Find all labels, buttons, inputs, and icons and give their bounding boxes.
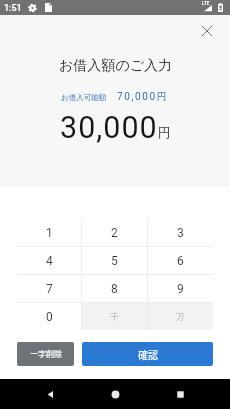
- button[interactable]: Home: [100, 379, 130, 409]
- button[interactable]: 千: [82, 303, 147, 330]
- button[interactable]: 5: [82, 247, 147, 274]
- staticText: 7: [46, 282, 53, 296]
- button[interactable]: 6: [148, 247, 213, 274]
- button[interactable]: 4: [17, 247, 81, 274]
- button[interactable]: 万: [148, 303, 213, 330]
- button[interactable]: 1: [17, 219, 81, 246]
- button[interactable]: 確認: [82, 342, 213, 366]
- staticText: 30,000: [60, 110, 158, 146]
- staticText: 9: [177, 282, 184, 296]
- staticText: お借入可能額: [61, 93, 107, 102]
- staticText: 70,000円: [117, 90, 169, 103]
- button[interactable]: 閉じる: [192, 16, 221, 45]
- button[interactable]: Recents: [165, 379, 195, 409]
- staticText: 円: [158, 125, 171, 141]
- staticText: 0: [46, 310, 53, 324]
- staticText: 千: [110, 311, 119, 322]
- button[interactable]: 9: [148, 275, 213, 302]
- button[interactable]: 3: [148, 219, 213, 246]
- staticText: 4: [46, 254, 53, 268]
- staticText: 3: [177, 226, 184, 240]
- staticText: 6: [177, 254, 184, 268]
- button[interactable]: Back: [35, 379, 65, 409]
- staticText: LTE: [202, 1, 210, 6]
- staticText: 確認: [138, 347, 158, 361]
- staticText: 8: [111, 282, 118, 296]
- button[interactable]: 0: [17, 303, 81, 330]
- staticText: 一字削除: [30, 348, 62, 360]
- button[interactable]: 2: [82, 219, 147, 246]
- button[interactable]: 8: [82, 275, 147, 302]
- button[interactable]: 一字削除: [17, 342, 74, 366]
- staticText: 万: [176, 311, 185, 322]
- button[interactable]: 7: [17, 275, 81, 302]
- staticText: お借入額のご入力: [59, 57, 172, 75]
- staticText: 1:51: [4, 3, 22, 14]
- staticText: 2: [111, 226, 118, 240]
- staticText: 1: [46, 226, 53, 240]
- staticText: 5: [111, 254, 118, 268]
